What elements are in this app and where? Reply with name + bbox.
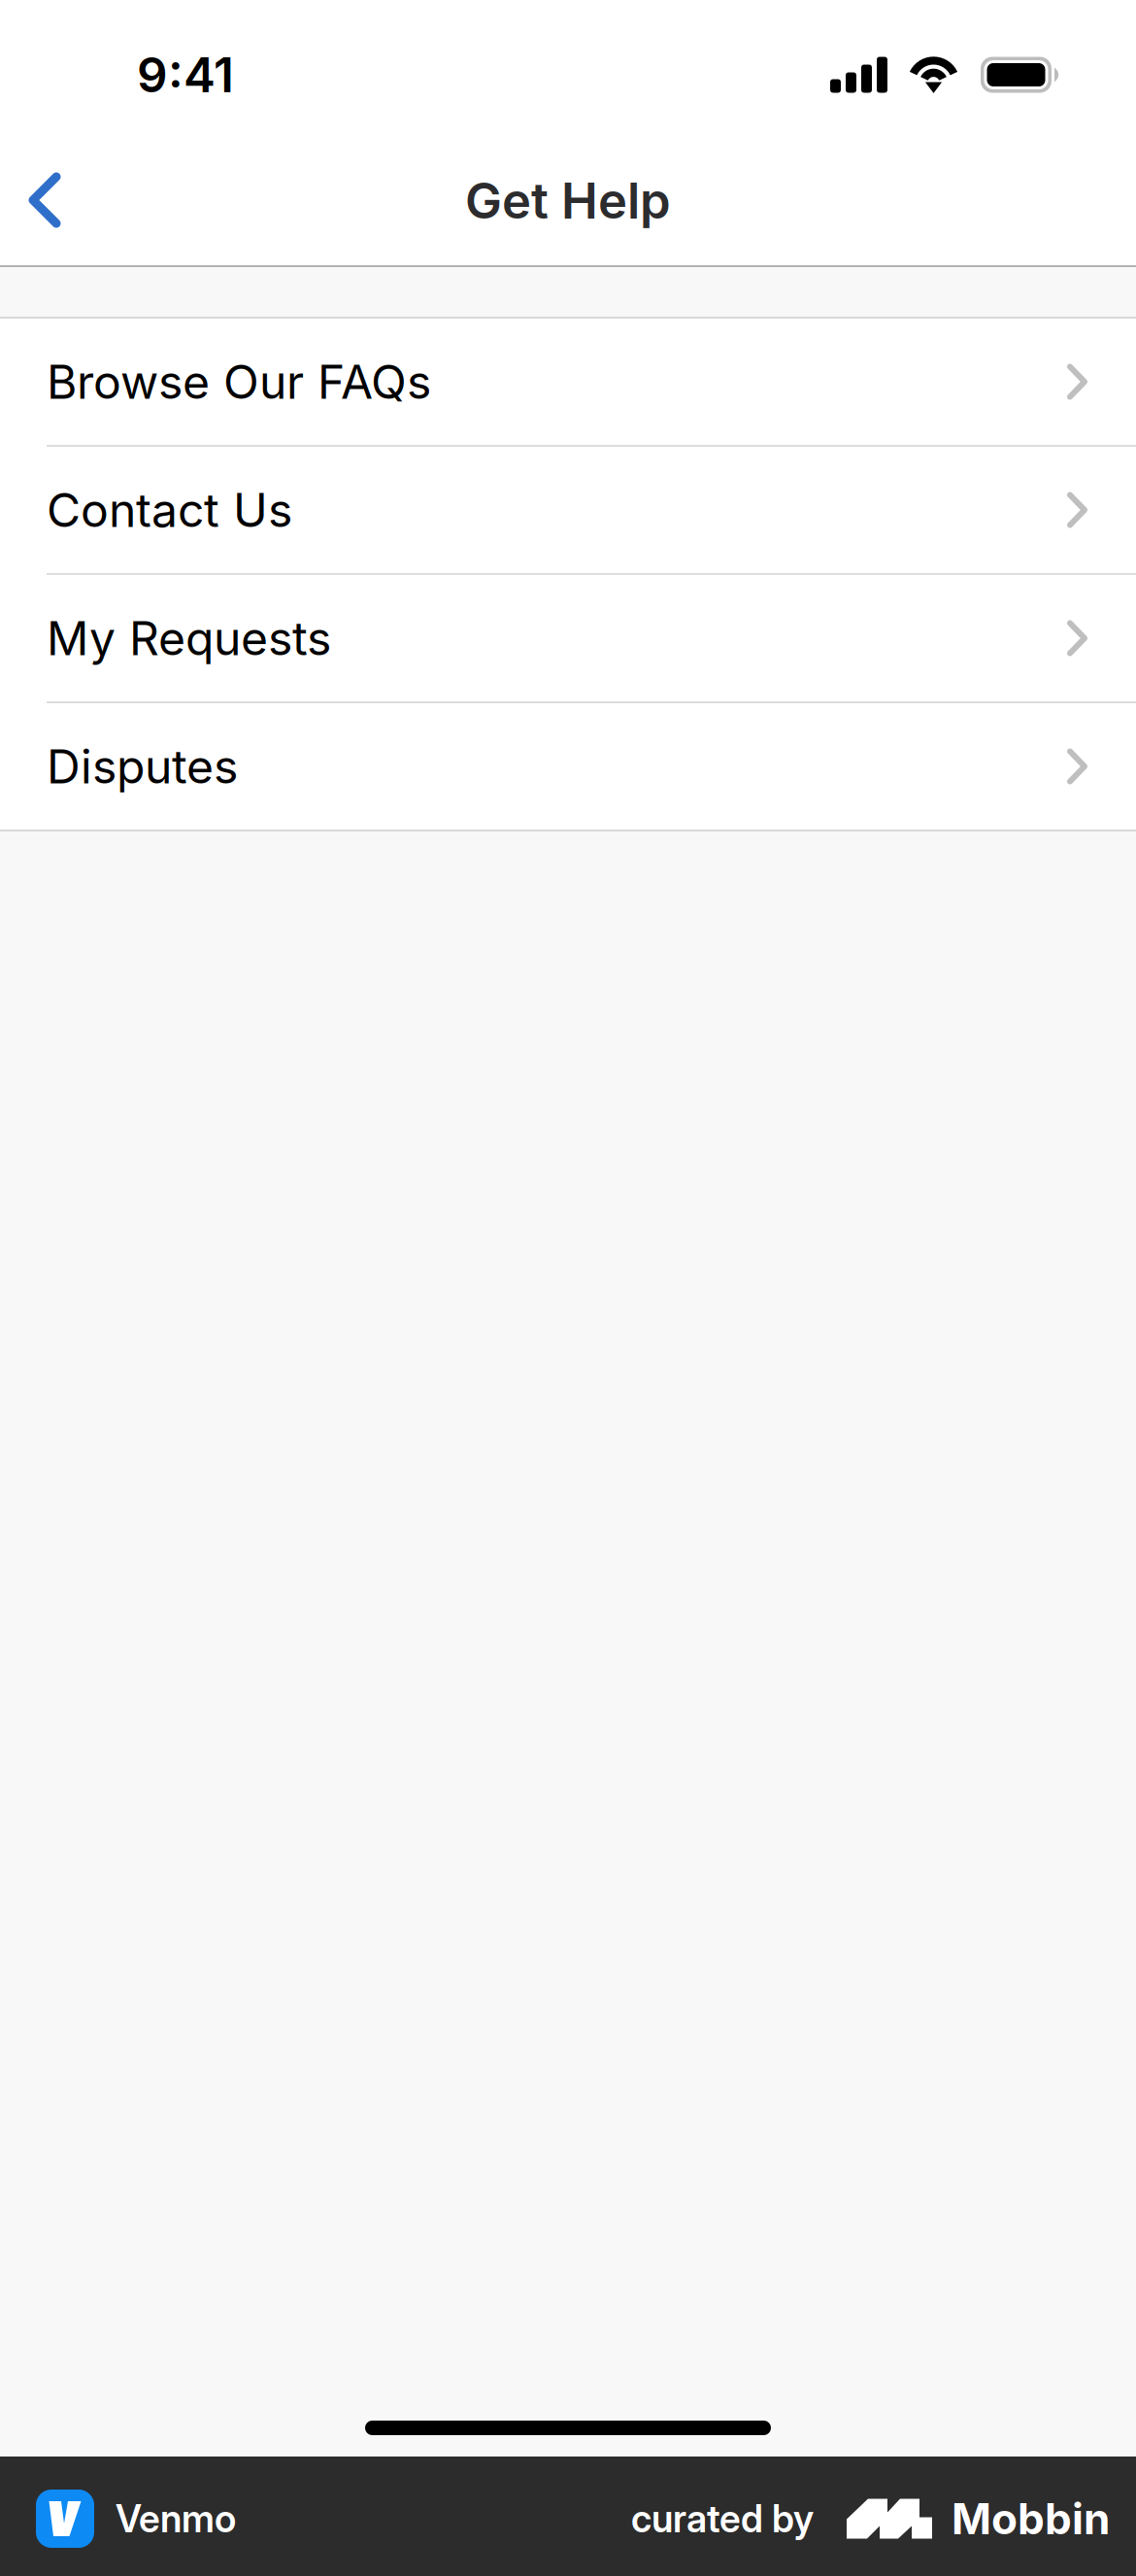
button[interactable]: Back [0,136,113,265]
staticText: 9:41 [137,46,234,104]
staticText: Get Help [465,171,671,230]
button[interactable]: Contact Us [0,447,1136,573]
button[interactable]: My Requests [0,575,1136,701]
staticText: My Requests [47,610,331,666]
staticText: Disputes [47,738,238,795]
staticText: Browse Our FAQs [47,354,431,410]
button[interactable]: Browse Our FAQs [0,319,1136,445]
staticText: Contact Us [47,482,292,538]
staticText: Mobbin [952,2493,1110,2545]
staticText: Venmo [116,2496,236,2541]
staticText: curated by [631,2496,814,2541]
button[interactable]: Disputes [0,703,1136,830]
